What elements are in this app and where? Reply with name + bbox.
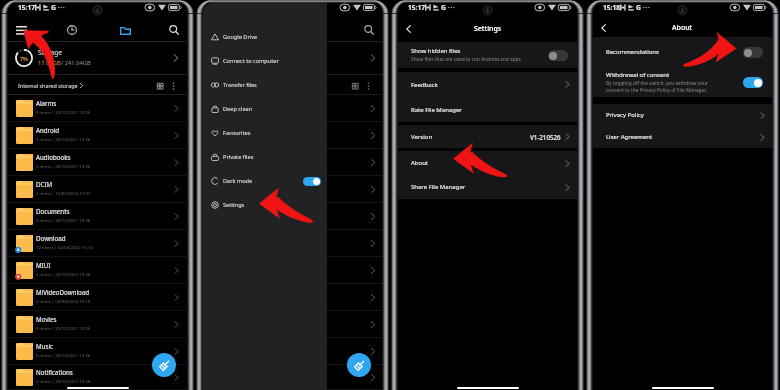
staticText: / 241.04GB xyxy=(61,59,91,67)
staticText: Settings xyxy=(223,201,245,209)
staticText: G xyxy=(51,3,56,12)
staticText: Version xyxy=(411,133,433,141)
staticText: 0 items | 20/12/2021 19:26 xyxy=(36,325,91,331)
button[interactable]: Open navigation menu xyxy=(12,21,30,39)
button[interactable]: Change view xyxy=(153,79,166,92)
staticText: Documents xyxy=(36,207,70,215)
staticText: Storage xyxy=(38,48,63,57)
button[interactable]: Share File Manager xyxy=(398,175,577,199)
button[interactable]: MIUI xyxy=(8,257,187,284)
button[interactable]: Notifications xyxy=(8,365,187,390)
staticText: 15:17 xyxy=(18,3,35,12)
staticText: 3 items | 20/12/2021 19:26 xyxy=(36,136,91,142)
button[interactable]: Rate File Manager xyxy=(398,97,577,122)
staticText: MIUI xyxy=(36,261,51,269)
button[interactable]: Google Drive xyxy=(203,25,327,49)
staticText: About xyxy=(672,23,693,33)
button[interactable]: Version xyxy=(398,125,577,148)
staticText: 0 items | 20/12/2021 19:26 xyxy=(36,378,91,384)
button[interactable]: 7% xyxy=(8,41,187,75)
button[interactable]: About xyxy=(398,151,577,175)
staticText: Download xyxy=(36,234,66,242)
staticText: Transfer files xyxy=(223,81,257,89)
staticText: MiVideoDownload xyxy=(36,288,89,296)
staticText: By toggling off the switch, you withdraw… xyxy=(606,80,709,93)
staticText: 3 items | 20/12/2021 19:26 xyxy=(36,271,91,277)
staticText: Connect to computer xyxy=(223,57,279,65)
staticText: Share File Manager xyxy=(411,183,466,191)
button[interactable]: DCIM xyxy=(8,176,187,203)
staticText: About xyxy=(411,159,429,167)
button[interactable]: Audiobooks xyxy=(8,149,187,176)
button[interactable]: Android xyxy=(8,122,187,149)
button[interactable]: Browse files xyxy=(116,21,134,39)
button[interactable]: User Agreement xyxy=(593,126,772,148)
staticText: V1-210526 xyxy=(530,133,561,141)
staticText: Deep clean xyxy=(223,105,253,113)
button[interactable]: Feedback xyxy=(398,72,577,97)
staticText: 17.03GB xyxy=(38,59,61,67)
button[interactable]: Transfer files xyxy=(203,73,327,97)
button[interactable]: Alarms xyxy=(8,95,187,122)
button[interactable]: Clean up xyxy=(152,353,176,377)
staticText: 0 items | 04/04/2022 15:10 xyxy=(36,298,91,304)
button[interactable]: Music xyxy=(8,338,187,365)
staticText: 15:17 xyxy=(408,3,425,12)
button[interactable]: Privacy Policy xyxy=(593,104,772,126)
button[interactable]: MiVideoDownload xyxy=(8,284,187,311)
staticText: Privacy Policy xyxy=(606,111,644,119)
staticText: Favourites xyxy=(223,129,251,137)
button[interactable]: Search xyxy=(165,21,183,39)
staticText: User Agreement xyxy=(606,133,653,141)
staticText: Notifications xyxy=(36,368,73,376)
button[interactable]: Back xyxy=(596,20,611,35)
button[interactable]: Withdrawal of consent xyxy=(743,77,763,88)
staticText: Google Drive xyxy=(223,33,258,41)
staticText: DCIM xyxy=(36,180,53,188)
button[interactable]: Dark mode xyxy=(203,169,327,193)
staticText: G xyxy=(441,3,446,12)
button[interactable]: More options xyxy=(167,79,180,92)
button[interactable]: Dark mode xyxy=(303,177,321,186)
staticText: Movies xyxy=(36,315,57,323)
button[interactable]: Show hidden files xyxy=(548,50,568,61)
staticText: Recommendations xyxy=(606,48,659,56)
staticText: Feedback xyxy=(411,81,438,89)
button[interactable]: Deep clean xyxy=(203,97,327,121)
button[interactable]: Favourites xyxy=(203,121,327,145)
staticText: 2 items | 15/03/2022 17:01 xyxy=(36,190,91,196)
staticText: Rate File Manager xyxy=(411,106,462,114)
button[interactable]: Recommendations xyxy=(593,37,772,67)
staticText: 15:18 xyxy=(603,3,620,12)
button[interactable]: Settings xyxy=(203,193,327,217)
staticText: G xyxy=(636,3,641,12)
button[interactable]: Show hidden files xyxy=(398,42,577,68)
button[interactable]: Connect to computer xyxy=(203,49,327,73)
staticText: 0 items | 20/12/2021 19:26 xyxy=(36,217,91,223)
staticText: Show hidden files xyxy=(411,47,461,55)
button[interactable]: Clean up xyxy=(347,353,371,377)
staticText: Dark mode xyxy=(223,177,253,185)
staticText: Settings xyxy=(474,24,502,34)
staticText: Private files xyxy=(223,153,254,161)
staticText: 0 items | 20/12/2021 19:26 xyxy=(36,163,91,169)
button[interactable]: Internal shared storage xyxy=(15,80,84,91)
button[interactable]: Private files xyxy=(203,145,327,169)
button[interactable]: Back xyxy=(401,21,416,36)
staticText: Music xyxy=(36,342,53,350)
button[interactable]: Download xyxy=(8,230,187,257)
staticText: 0 items | 20/12/2021 19:26 xyxy=(36,109,91,115)
button[interactable]: Recent files xyxy=(63,21,81,39)
button[interactable]: Movies xyxy=(8,311,187,338)
staticText: 7% xyxy=(20,55,28,62)
staticText: 0 items | 20/12/2021 19:26 xyxy=(36,352,91,358)
staticText: Alarms xyxy=(36,99,57,107)
staticText: 12 items | 04/04/2022 15:14 xyxy=(36,244,93,250)
button[interactable]: Withdrawal of consent xyxy=(593,67,772,97)
staticText: Audiobooks xyxy=(36,153,71,161)
button[interactable]: Recommendations xyxy=(743,47,763,58)
button[interactable]: Documents xyxy=(8,203,187,230)
staticText: Show files that are used to run Android … xyxy=(411,56,521,63)
